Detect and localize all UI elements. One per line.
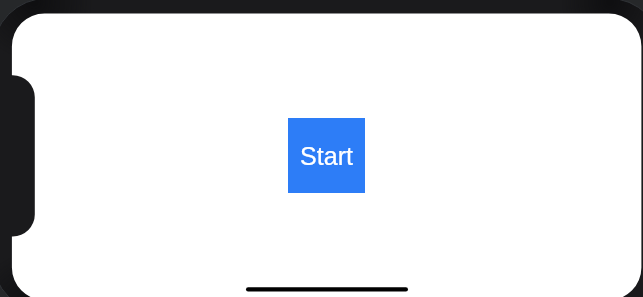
button[interactable]: Start — [288, 118, 365, 193]
staticText: Start — [300, 142, 353, 170]
